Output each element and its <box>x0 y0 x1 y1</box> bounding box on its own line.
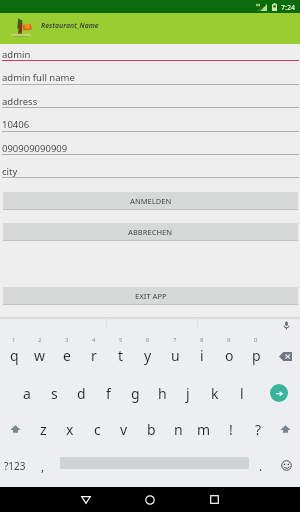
staticText: u <box>171 346 180 365</box>
button[interactable]: ANMELDEN <box>3 192 298 210</box>
button[interactable]: , <box>33 447 53 484</box>
button[interactable]: 0 <box>243 338 269 379</box>
staticText: b <box>147 420 156 439</box>
button[interactable]: 5 <box>108 338 134 379</box>
staticText: i <box>200 346 204 365</box>
staticText: Restaurant_Name <box>41 21 99 30</box>
button[interactable]: c <box>84 410 110 448</box>
button[interactable]: a <box>14 373 40 413</box>
staticText: . <box>259 458 263 474</box>
button[interactable]: n <box>165 410 191 448</box>
staticText: admin <box>2 48 31 61</box>
staticText: 6 <box>146 336 150 344</box>
button[interactable]: f <box>95 373 121 413</box>
button[interactable]: Voice input <box>280 319 292 331</box>
staticText: r <box>91 346 97 365</box>
button[interactable]: 10406 <box>0 108 300 131</box>
staticText: 3 <box>65 336 69 344</box>
staticText: ! <box>229 420 233 439</box>
staticText: ABBRECHEN <box>128 227 173 237</box>
button[interactable]: 3 <box>54 338 80 379</box>
button[interactable]: Shift <box>3 410 27 448</box>
staticText: d <box>77 384 86 403</box>
button[interactable]: 9 <box>216 338 242 379</box>
staticText: 7 <box>173 336 177 344</box>
staticText: 5 <box>119 336 123 344</box>
button[interactable]: 1 <box>1 338 27 379</box>
button[interactable]: k <box>202 373 228 413</box>
staticText: city <box>2 165 18 178</box>
staticText: z <box>40 420 47 439</box>
staticText: s <box>51 384 58 403</box>
staticText: c <box>94 420 101 439</box>
staticText: 7:24 <box>281 3 295 13</box>
staticText: v <box>120 420 128 439</box>
staticText: ?123 <box>4 459 26 473</box>
staticText: 8 <box>200 336 204 344</box>
button[interactable]: m <box>191 410 217 448</box>
button[interactable]: h <box>149 373 175 413</box>
button[interactable]: s <box>41 373 67 413</box>
staticText: , <box>41 458 45 474</box>
staticText: address <box>2 95 38 108</box>
button[interactable]: address <box>0 85 300 108</box>
button[interactable]: 090909090909 <box>0 132 300 155</box>
button[interactable]: d <box>68 373 94 413</box>
button[interactable]: 8 <box>189 338 215 379</box>
staticText: t <box>118 346 124 365</box>
button[interactable]: v <box>111 410 137 448</box>
button[interactable]: b <box>138 410 164 448</box>
button[interactable]: city <box>0 155 300 178</box>
staticText: h <box>158 384 167 403</box>
button[interactable]: Enter <box>270 384 288 402</box>
button[interactable]: . <box>251 447 271 484</box>
staticText: e <box>63 346 71 365</box>
staticText: 1 <box>12 336 16 344</box>
button[interactable]: Shift <box>273 410 297 448</box>
staticText: m <box>197 420 211 439</box>
button[interactable]: 7 <box>162 338 188 379</box>
button[interactable]: Backspace <box>272 338 298 379</box>
button[interactable]: admin full name <box>0 61 300 84</box>
staticText: y <box>144 346 152 365</box>
staticText: g <box>131 384 140 403</box>
button[interactable]: x <box>57 410 83 448</box>
button[interactable]: ! <box>218 410 244 448</box>
button[interactable]: EXIT APP <box>3 287 298 305</box>
button[interactable]: ?123 <box>0 447 30 484</box>
button[interactable]: 4 <box>81 338 107 379</box>
staticText: ? <box>255 420 262 439</box>
button[interactable]: l <box>229 373 255 413</box>
staticText: 090909090909 <box>2 142 68 155</box>
button[interactable]: 2 <box>27 338 53 379</box>
staticText: x <box>66 420 74 439</box>
button[interactable]: z <box>30 410 56 448</box>
staticText: f <box>106 384 111 403</box>
staticText: admin full name <box>2 71 75 84</box>
staticText: k <box>211 384 219 403</box>
staticText: w <box>34 346 46 365</box>
button[interactable]: Recents <box>192 487 236 512</box>
staticText: a <box>23 384 31 403</box>
staticText: j <box>186 384 190 403</box>
button[interactable]: Home <box>128 487 172 512</box>
button[interactable]: ? <box>245 410 271 448</box>
button[interactable]: j <box>175 373 201 413</box>
staticText: o <box>225 346 234 365</box>
button[interactable]: 6 <box>135 338 161 379</box>
staticText: 2 <box>38 336 42 344</box>
button[interactable]: admin <box>0 38 300 61</box>
button[interactable]: ABBRECHEN <box>3 223 298 241</box>
button[interactable]: g <box>122 373 148 413</box>
button[interactable]: Back <box>64 487 108 512</box>
staticText: 9 <box>227 336 231 344</box>
staticText: 0 <box>254 336 258 344</box>
staticText: 10406 <box>2 118 30 131</box>
staticText: 4 <box>92 336 96 344</box>
staticText: ANMELDEN <box>130 196 172 206</box>
staticText: l <box>240 384 244 403</box>
staticText: n <box>174 420 183 439</box>
staticText: p <box>252 346 261 365</box>
button[interactable]: Emoji <box>276 447 296 484</box>
